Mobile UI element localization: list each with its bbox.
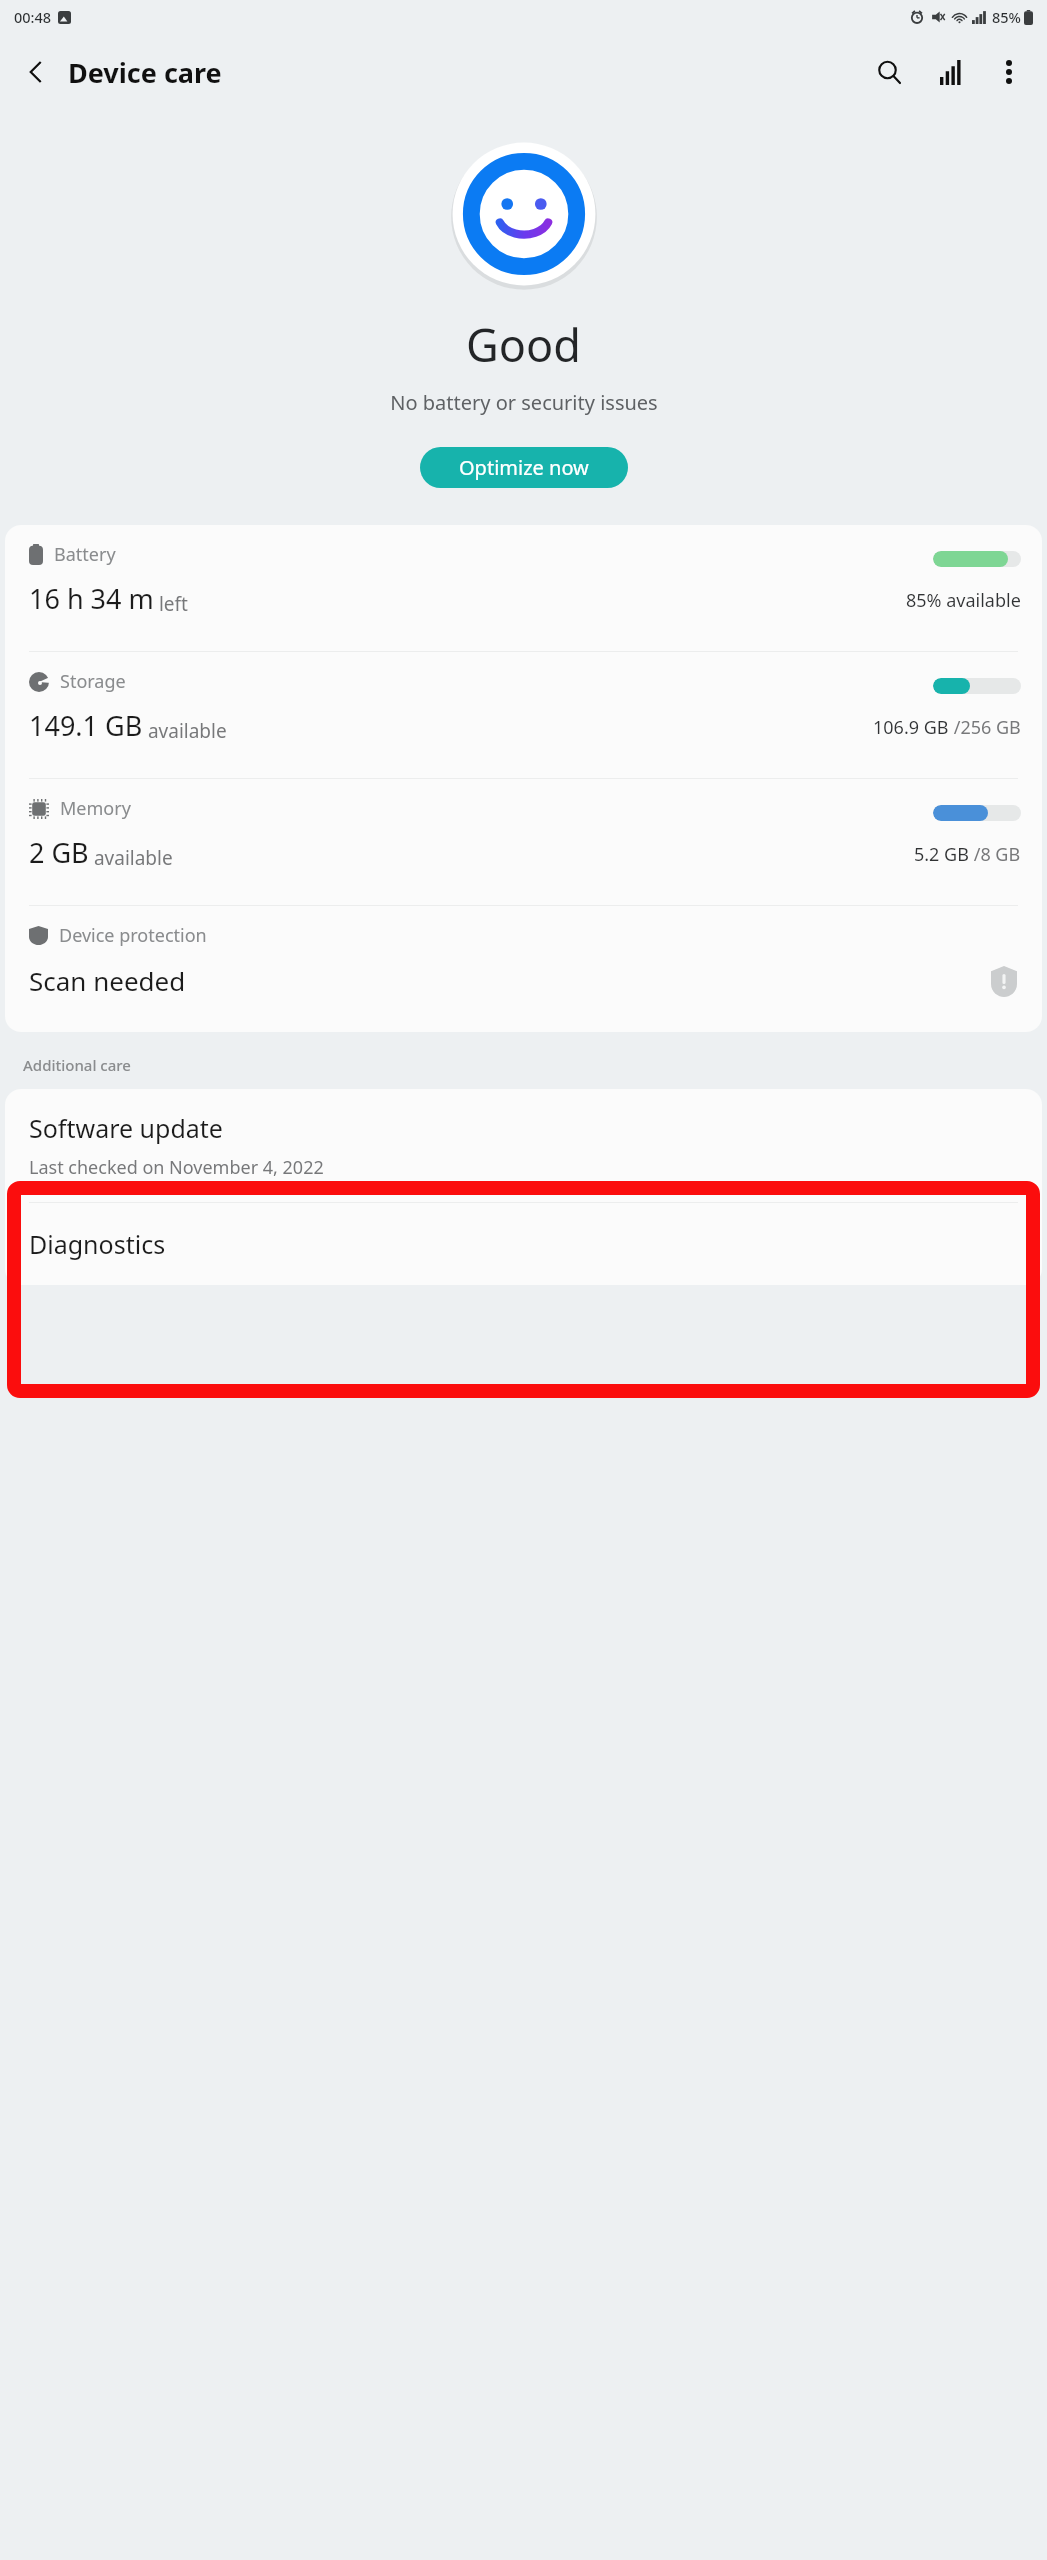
staticText: Device protection <box>59 923 207 948</box>
staticText: 2 GB <box>29 834 89 871</box>
button[interactable]: Software update <box>5 1089 1042 1202</box>
button[interactable]: More options <box>981 44 1037 100</box>
button[interactable]: Storage <box>5 652 1042 778</box>
staticText: 85% <box>992 7 1021 27</box>
staticText: 00:48 <box>14 7 52 27</box>
staticText: available <box>89 845 173 871</box>
button[interactable]: Memory <box>5 779 1042 905</box>
staticText: Good <box>466 314 581 375</box>
staticText: 149.1 GB <box>29 707 143 744</box>
staticText: Diagnostics <box>29 1227 166 1261</box>
staticText: left <box>154 591 188 617</box>
staticText: Additional care <box>23 1055 131 1075</box>
staticText: 5.2 GB <box>914 842 969 867</box>
button[interactable]: Usage statistics <box>925 44 981 100</box>
staticText: Last checked on November 4, 2022 <box>29 1155 324 1180</box>
staticText: /8 GB <box>969 842 1021 867</box>
staticText: Device care <box>68 54 222 91</box>
staticText: Software update <box>29 1111 223 1145</box>
staticText: Scan needed <box>29 963 186 998</box>
button[interactable]: Battery <box>5 525 1042 651</box>
button[interactable]: Optimize now <box>420 447 628 488</box>
staticText: 106.9 GB <box>873 715 949 740</box>
staticText: Battery <box>54 542 116 567</box>
button[interactable]: Device protection <box>5 906 1042 1032</box>
staticText: 85% available <box>906 588 1021 613</box>
staticText: available <box>143 718 227 744</box>
button[interactable]: Back <box>10 46 62 98</box>
staticText: Memory <box>60 796 131 821</box>
button[interactable]: Diagnostics <box>5 1203 1042 1285</box>
staticText: Storage <box>60 669 126 694</box>
staticText: Optimize now <box>459 454 589 481</box>
staticText: /256 GB <box>949 715 1021 740</box>
staticText: 16 h 34 m <box>29 580 154 617</box>
button[interactable]: Search <box>861 44 917 100</box>
staticText: No battery or security issues <box>390 389 658 416</box>
